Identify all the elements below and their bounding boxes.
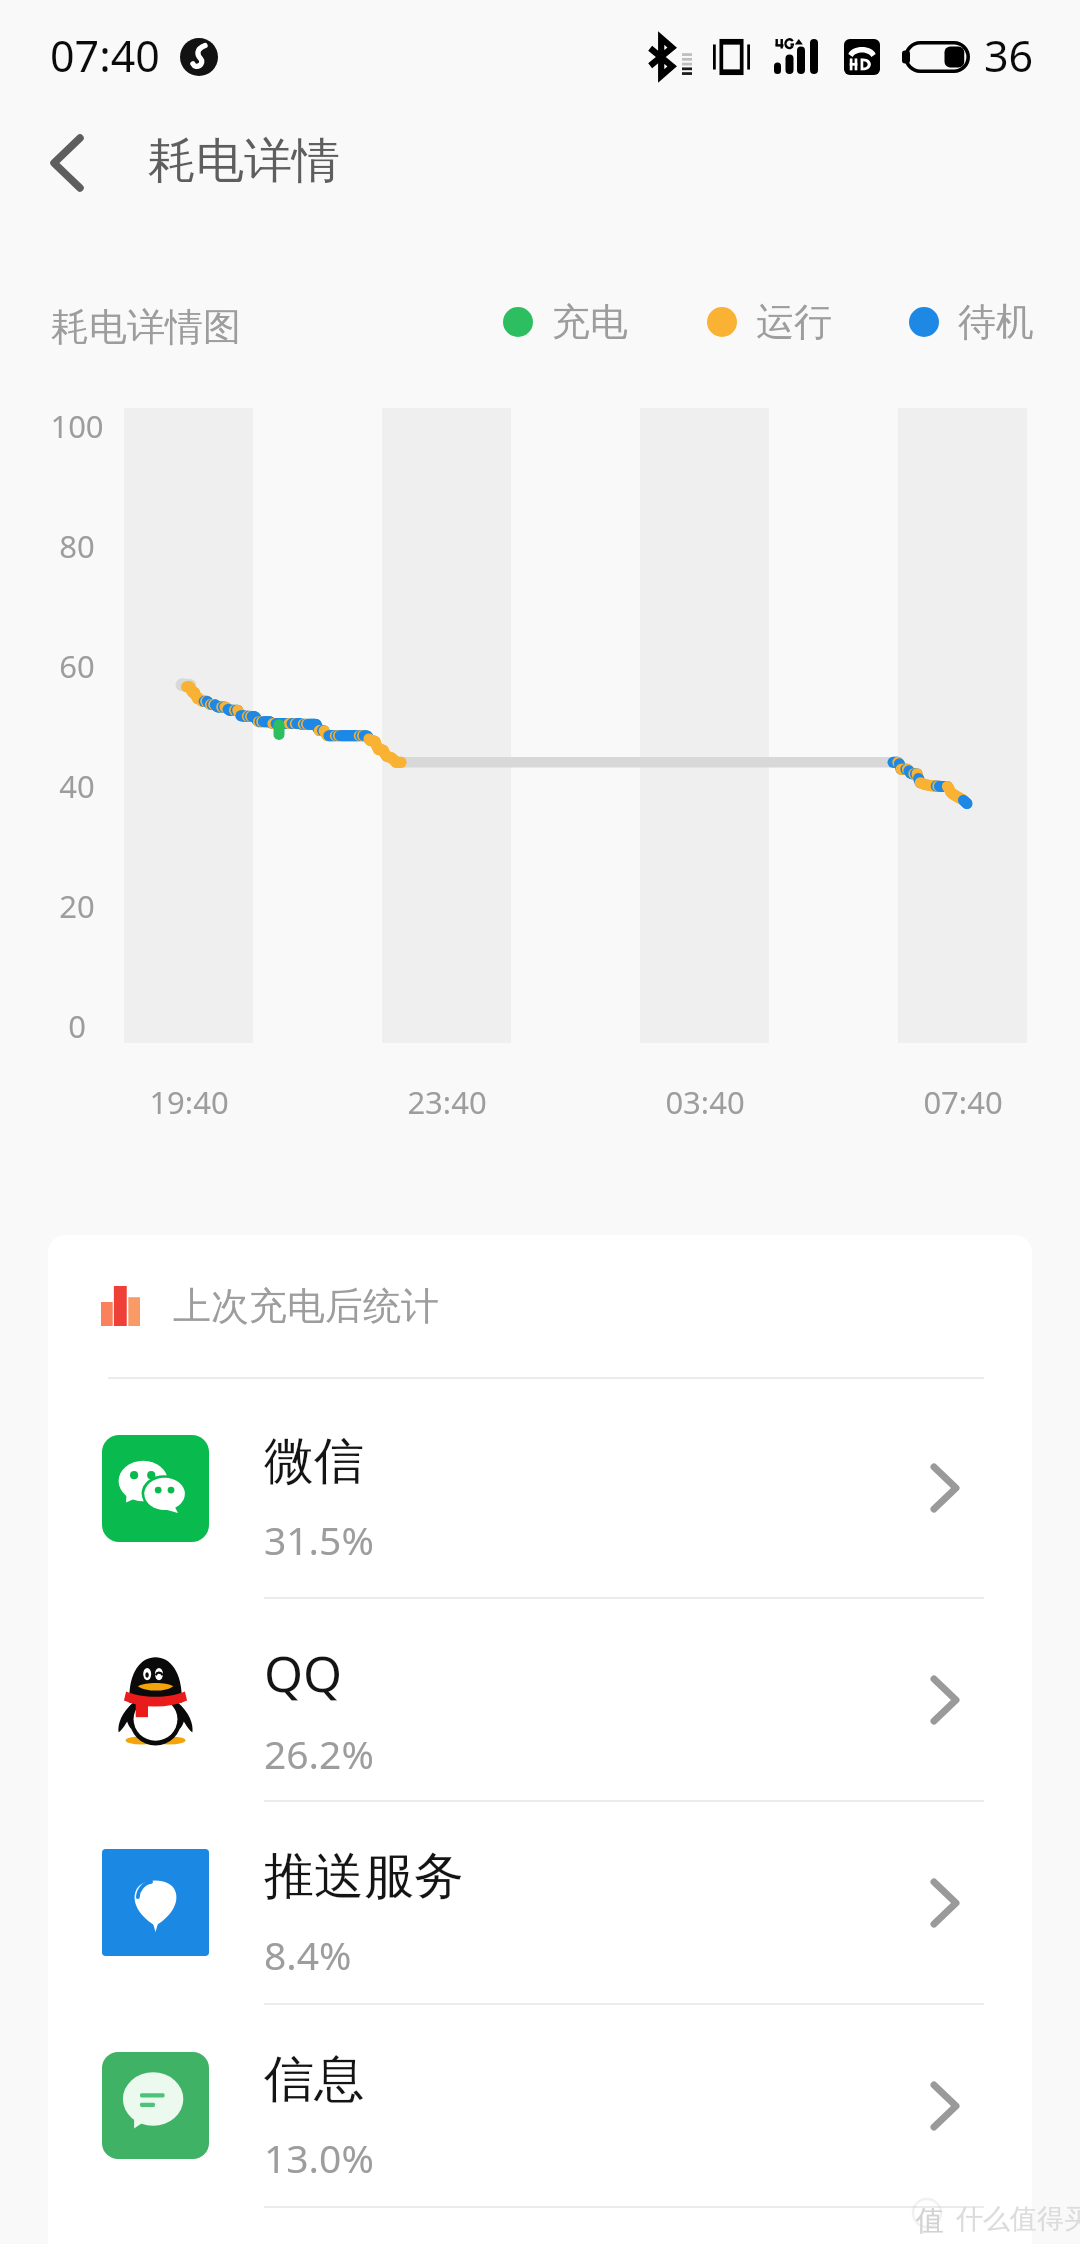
staticText: 20	[0, 885, 177, 927]
staticText: 待机	[958, 298, 1034, 346]
staticText: 运行	[756, 298, 832, 346]
staticText: 充电	[552, 298, 628, 346]
staticText: 耗电详情图	[51, 303, 241, 351]
staticText: 100	[0, 405, 177, 447]
staticText: 40	[0, 765, 177, 807]
staticText: 36	[984, 26, 1034, 85]
staticText: 07:40	[50, 26, 160, 85]
button[interactable]: 推送服务	[48, 1802, 1032, 2005]
staticText: 26.2%	[264, 1727, 374, 1780]
staticText: 80	[0, 525, 177, 567]
staticText: 31.5%	[264, 1513, 374, 1566]
staticText: 值	[916, 2203, 944, 2238]
staticText: 8.4%	[264, 1928, 352, 1981]
staticText: 信息	[264, 2048, 364, 2111]
button[interactable]: 微信	[48, 1379, 1032, 1599]
staticText: 推送服务	[264, 1845, 464, 1908]
button[interactable]: 信息	[48, 2005, 1032, 2208]
staticText: 60	[0, 645, 177, 687]
staticText: 0	[0, 1005, 177, 1047]
staticText: 07:40	[813, 1081, 1080, 1123]
button[interactable]: QQ	[48, 1599, 1032, 1802]
staticText: 03:40	[555, 1081, 855, 1123]
staticText: 13.0%	[264, 2131, 374, 2184]
staticText: 23:40	[297, 1081, 597, 1123]
staticText: QQ	[264, 1639, 343, 1707]
staticText: 上次充电后统计	[173, 1282, 439, 1330]
button[interactable]: Back	[18, 114, 116, 212]
staticText: 微信	[264, 1430, 364, 1493]
staticText: 什么值得买	[956, 2202, 1080, 2236]
staticText: 19:40	[39, 1081, 339, 1123]
staticText: 耗电详情	[148, 131, 340, 191]
